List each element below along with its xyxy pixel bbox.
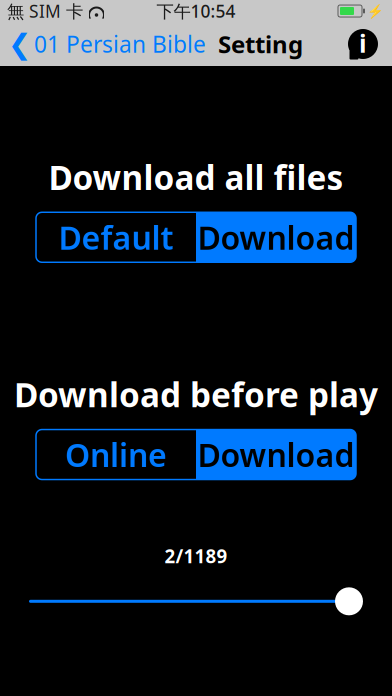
staticText: Default (58, 216, 173, 258)
staticText: 下午10:54 (156, 0, 235, 22)
staticText: Download (197, 433, 354, 476)
button[interactable]: Online (36, 429, 196, 479)
staticText: 2/1189 (164, 543, 227, 568)
button[interactable]: Download (196, 212, 356, 262)
button[interactable]: ❮ (0, 22, 206, 66)
button[interactable]: Track position (29, 585, 363, 617)
staticText: i (359, 26, 367, 60)
staticText: ❮ (8, 28, 31, 60)
staticText: ⚡ (367, 3, 384, 19)
staticText: 無 SIM 卡 (7, 0, 83, 22)
button[interactable]: Download (196, 429, 356, 479)
staticText: Download (197, 216, 354, 258)
staticText: Download before play (14, 372, 378, 417)
staticText: 01 Persian Bible (34, 29, 206, 59)
button[interactable]: Information (346, 27, 392, 61)
staticText: Online (65, 433, 167, 476)
staticText: Setting (218, 28, 303, 60)
button[interactable]: Default (36, 212, 196, 262)
staticText: Download all files (48, 155, 343, 199)
